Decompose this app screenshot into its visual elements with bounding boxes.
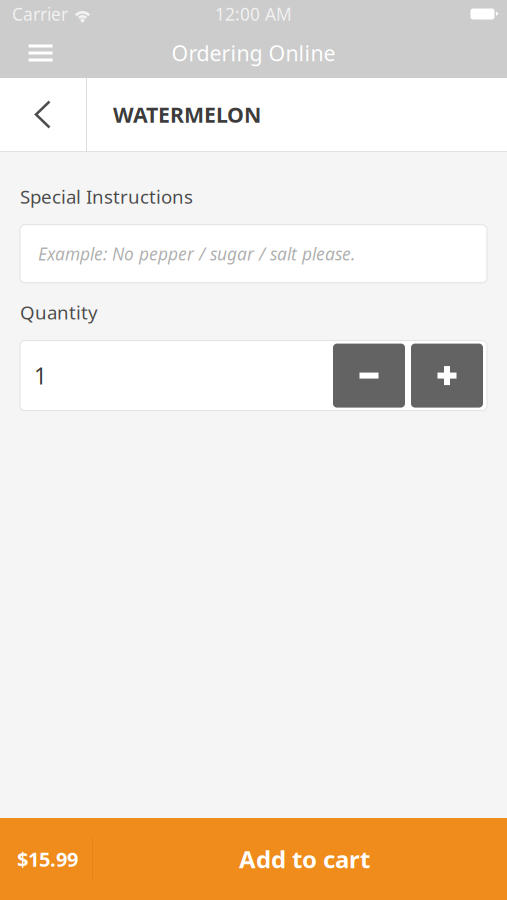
button[interactable]: Menu [0, 28, 81, 78]
staticText: $15.99 [17, 846, 78, 872]
button[interactable]: Back [0, 78, 86, 151]
staticText: 1 [34, 360, 47, 391]
staticText: Example: No pepper / sugar / salt please… [38, 242, 355, 265]
staticText: 12:00 AM [215, 2, 292, 25]
button[interactable]: Increase quantity [411, 344, 483, 408]
button[interactable]: Example: No pepper / sugar / salt please… [0, 225, 507, 283]
staticText: WATERMELON [113, 100, 261, 129]
staticText: Ordering Online [171, 39, 335, 67]
staticText: Special Instructions [20, 184, 193, 209]
staticText: Add to cart [239, 843, 370, 875]
button[interactable]: $15.99 [0, 818, 507, 900]
button[interactable]: Decrease quantity [333, 344, 405, 408]
staticText: Quantity [20, 300, 98, 325]
staticText: Carrier [12, 2, 68, 25]
